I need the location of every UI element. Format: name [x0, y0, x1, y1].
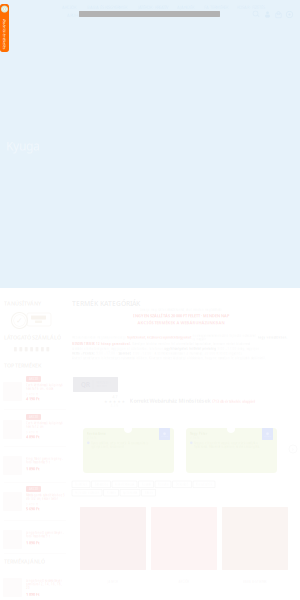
button[interactable]: Fiók — [264, 11, 271, 18]
button[interactable]: Lenga fonott garnis tányér - fotó faszob… — [3, 524, 69, 549]
button[interactable]: Lenga fonott kosárka tányér garnitúra 12… — [3, 572, 69, 597]
staticText: Mártás gomb ajándékdoboz 3 db (32 cm, ék… — [26, 493, 65, 500]
staticText: 1 890 Ft — [26, 540, 40, 545]
button[interactable]: BABA ÉS GYERMEK — [222, 507, 288, 583]
button[interactable]: AKCIÓK — [151, 507, 217, 583]
staticText: MINDEN TERMÉK 12 hónap garanciával. — [72, 342, 131, 346]
button[interactable]: Vásárlói értékelés — [0, 4, 9, 52]
staticText: Lenga fonott kosárka tányér garnitúra 12… — [26, 579, 62, 590]
staticText: INGYEN SZÁLLÍTÁS 20 000 FT FELETT · MIND… — [133, 313, 229, 318]
button[interactable]: AKCIÓ — [3, 376, 69, 401]
staticText: Kyuga — [6, 138, 40, 154]
staticText: LÁTOGATÓ SZÁMLÁLÓ — [4, 334, 61, 341]
staticText: 1 890 Ft — [26, 466, 40, 471]
staticText: TERMÉKAJÁNLÓ — [4, 558, 45, 565]
staticText: ÁRUHÁZ — [67, 12, 83, 18]
staticText: Vásárlói értékelés — [0, 31, 20, 37]
button[interactable]: AKCIÓ — [3, 486, 69, 511]
staticText: 1 890 Ft — [26, 592, 40, 597]
staticText: Ring fából garnis legény - fotó faszobrá… — [26, 457, 63, 464]
staticText: AKCIÓS TERMÉKEK A WEBÁRUHÁZUNKBAN — [137, 320, 224, 325]
button[interactable]: ÁRUHÁZ — [67, 12, 83, 18]
staticText: TERMÉK KATEGÓRIÁK — [72, 299, 140, 308]
button[interactable]: Ring fából garnis legény - fotó faszobrá… — [3, 450, 69, 475]
staticText: Cseh kéthalmazú kulipintyó hárs fa 16 cm… — [26, 383, 63, 390]
staticText: 4 890 Ft — [26, 434, 40, 439]
staticText: TOP TERMÉKEK — [4, 362, 41, 369]
staticText: ✓ — [16, 316, 23, 325]
staticText: Lenga fonott garnis tányér - fotó faszob… — [26, 531, 64, 538]
button[interactable]: AKCIÓ — [3, 414, 69, 439]
staticText: Korrekt Webáruház Minősítések — [130, 397, 211, 404]
button[interactable]: Nyelv — [286, 11, 293, 18]
staticText: AKCIÓ — [29, 415, 38, 419]
staticText: AKCIÓ — [29, 377, 38, 381]
staticText: AKCIÓ — [29, 487, 38, 491]
button[interactable]: JÁTÉKOK — [80, 507, 146, 583]
staticText: 5 690 Ft — [26, 506, 40, 511]
